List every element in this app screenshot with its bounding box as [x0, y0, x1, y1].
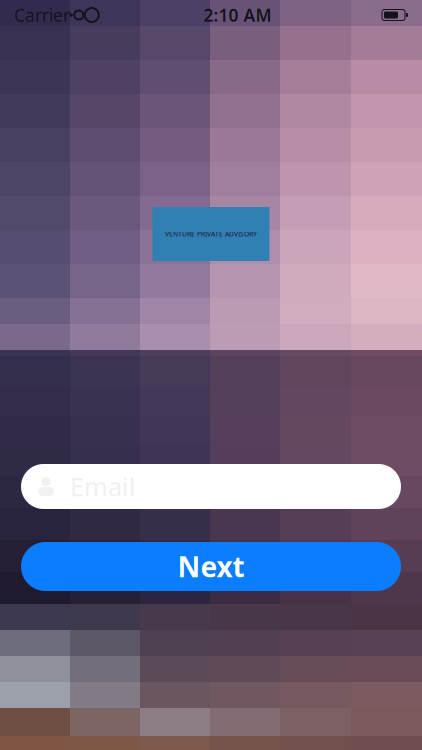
- button[interactable]: Next: [21, 542, 401, 591]
- staticText: Email: [70, 470, 136, 503]
- staticText: Next: [177, 548, 244, 585]
- button[interactable]: Email: [21, 464, 401, 509]
- staticText: VENTURE PRIVATE ADVISORY: [165, 230, 257, 238]
- staticText: Carrier: [14, 3, 70, 26]
- staticText: 2:10 AM: [203, 3, 271, 26]
